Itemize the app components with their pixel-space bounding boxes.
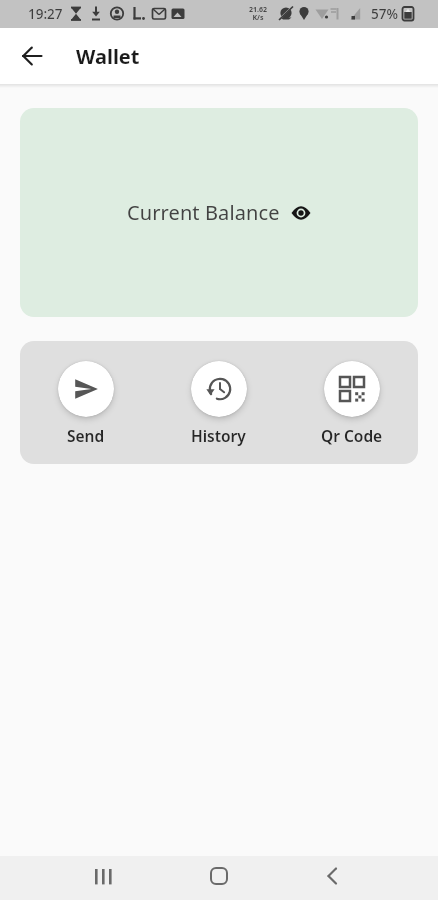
button[interactable] (146, 856, 292, 900)
staticText: 19:27 (28, 5, 63, 23)
staticText: History (191, 425, 246, 446)
staticText: 21.62 K/s (249, 5, 267, 22)
staticText: Qr Code (321, 425, 383, 446)
button[interactable]: Send (20, 361, 152, 446)
button[interactable] (8, 32, 56, 80)
button[interactable]: Qr Code (285, 361, 418, 446)
staticText: Current Balance (127, 199, 280, 226)
button[interactable]: History (152, 361, 285, 446)
button[interactable] (292, 856, 438, 900)
staticText: Send (67, 425, 105, 446)
button[interactable] (0, 856, 146, 900)
staticText: Wallet (76, 43, 140, 70)
button[interactable]: Current Balance (20, 108, 418, 317)
staticText: 57% (371, 5, 398, 23)
